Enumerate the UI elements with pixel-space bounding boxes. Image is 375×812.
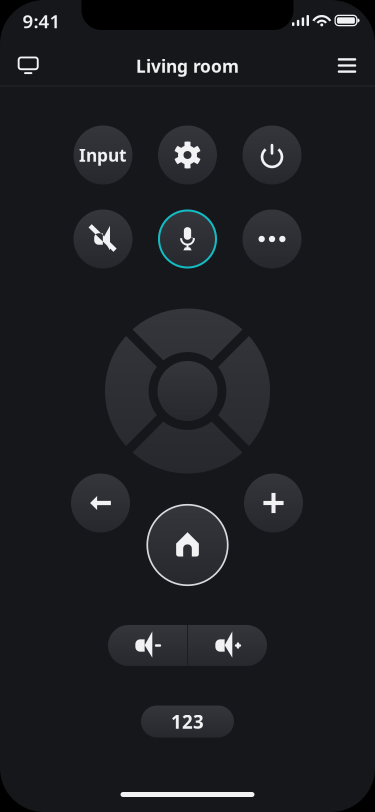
- button[interactable]: Add: [244, 473, 303, 532]
- button[interactable]: Input: [73, 125, 132, 184]
- staticText: 123: [171, 709, 204, 734]
- button[interactable]: Voice search: [158, 209, 217, 268]
- button[interactable]: Settings: [158, 125, 217, 184]
- button[interactable]: Back: [71, 473, 130, 532]
- button[interactable]: Menu: [325, 45, 369, 86]
- button[interactable]: 123: [141, 705, 234, 737]
- button[interactable]: Volume up: [188, 625, 267, 666]
- button[interactable]: Mute: [73, 209, 132, 268]
- button[interactable]: Home: [146, 504, 228, 586]
- staticText: Input: [79, 143, 127, 166]
- staticText: 9:41: [22, 9, 60, 33]
- button[interactable]: Volume down: [108, 625, 187, 666]
- button[interactable]: Navigation pad: [105, 308, 270, 473]
- button[interactable]: More: [242, 209, 301, 268]
- staticText: Living room: [136, 54, 239, 77]
- button[interactable]: Power: [242, 125, 301, 184]
- button[interactable]: Devices: [6, 45, 50, 86]
